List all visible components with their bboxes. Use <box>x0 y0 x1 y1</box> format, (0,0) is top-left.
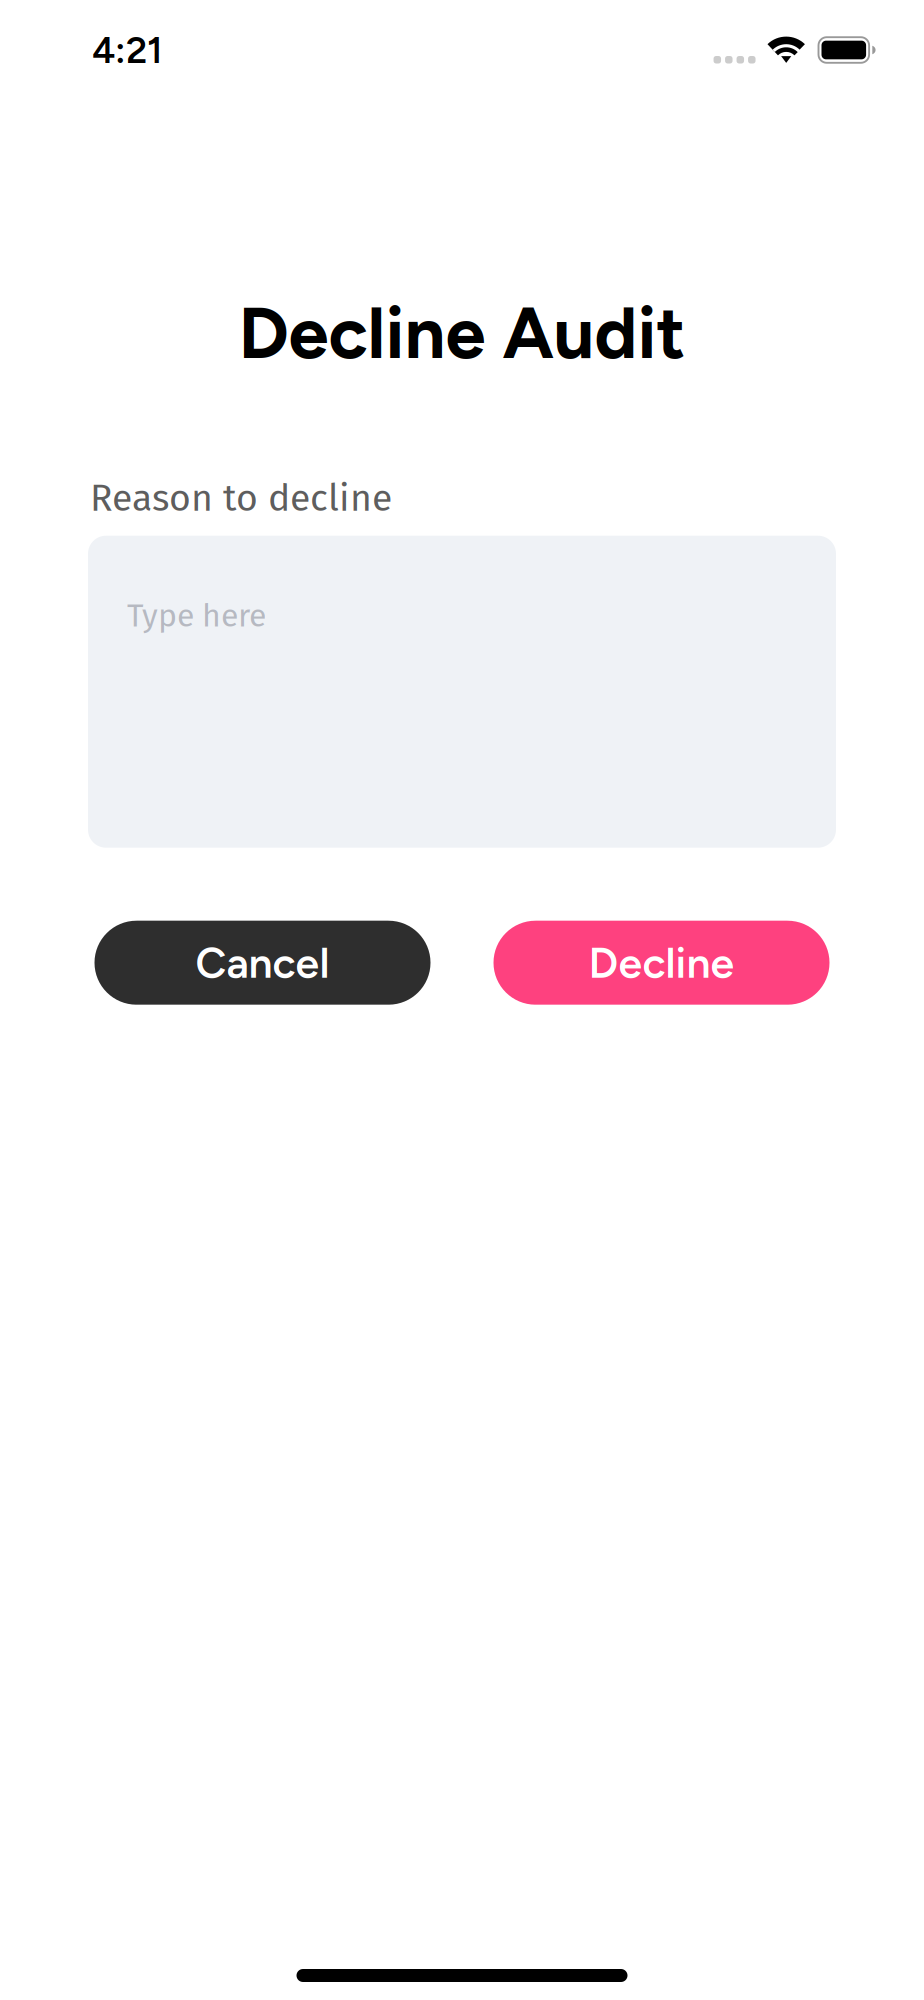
staticText: 4:21 <box>92 28 163 72</box>
button[interactable]: Cancel <box>94 921 430 1005</box>
staticText: Decline Audit <box>238 289 685 376</box>
staticText: Type here <box>127 597 266 635</box>
staticText: Reason to decline <box>90 476 392 521</box>
button[interactable]: Decline <box>493 921 829 1005</box>
staticText: Decline <box>588 937 734 988</box>
staticText: Cancel <box>195 937 329 988</box>
button[interactable]: Reason to decline, text field <box>88 536 836 848</box>
